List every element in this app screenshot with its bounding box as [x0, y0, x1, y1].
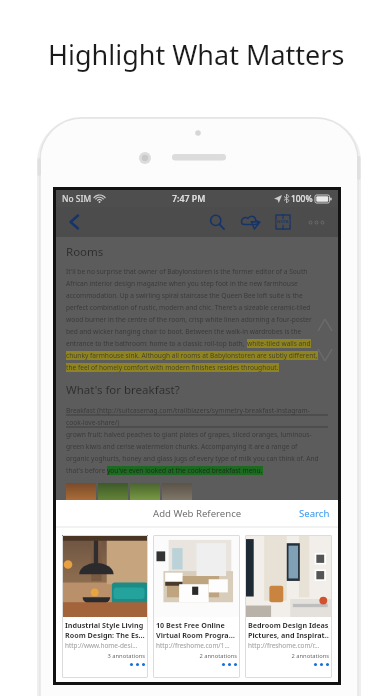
button[interactable]: Back [61, 209, 87, 235]
staticText: the feel of homely comfort with modern f… [66, 363, 279, 372]
staticText: 100% [291, 193, 313, 204]
staticText: chunky farmhouse sink. Although all room… [66, 351, 318, 360]
staticText: Bedroom Design Ideas, [248, 620, 329, 630]
staticText: African interior design magazine when yo… [66, 279, 298, 288]
staticText: that's before [66, 466, 107, 475]
button[interactable] [66, 483, 96, 505]
button[interactable] [98, 483, 128, 505]
staticText: accommodation. Up a swirling spiral stai… [66, 291, 303, 300]
staticText: No SIM [62, 193, 92, 204]
staticText: you've even looked at the cooked breakfa… [107, 466, 263, 475]
staticText: grown fruit: halved peaches to giant pla… [66, 430, 312, 439]
button[interactable]: Search [203, 208, 231, 236]
staticText: wood burner in the centre of the room, c… [66, 315, 312, 324]
staticText: 3 annotations [65, 652, 145, 660]
staticText: Add Web Reference [153, 507, 242, 520]
staticText: Rooms [66, 244, 104, 260]
staticText: Pictures, and Inspirat… [248, 630, 329, 640]
staticText: http://freshome.com/r… [248, 641, 320, 650]
staticText: cook-love-share/) [66, 418, 120, 427]
button[interactable]: Industrial Style Living [62, 535, 148, 678]
button[interactable]: Bedroom Design Ideas, [245, 535, 332, 678]
staticText: bed and wicker hanging chair to boot. Be… [66, 327, 302, 336]
staticText: What's for breakfast? [66, 382, 180, 398]
staticText: Search [299, 507, 330, 520]
staticText: NOTA [277, 219, 289, 225]
staticText: entrance to the bathroom: home to a clas… [66, 339, 247, 348]
staticText: white-tiled walls and [247, 339, 311, 348]
button[interactable]: Search [291, 502, 338, 525]
staticText: Breakfast (http://suitcasemag.com/trailb… [66, 406, 310, 415]
staticText: It'll be no surprise that owner of Babyl… [66, 267, 308, 276]
button[interactable] [162, 483, 192, 505]
staticText: http://www.home-desi… [65, 641, 138, 650]
staticText: Virtual Room Progra… [156, 630, 235, 640]
button[interactable]: Sync to cloud [236, 208, 264, 236]
staticText: Industrial Style Living [65, 620, 144, 630]
staticText: Room Design: The Es… [65, 630, 145, 640]
button[interactable]: More options [302, 208, 330, 236]
staticText: organic yoghurts, honey and glass jugs o… [66, 454, 319, 463]
staticText: perfect combination of rustic, modern an… [66, 303, 311, 312]
button[interactable]: Notes [269, 208, 297, 236]
button[interactable]: 10 Best Free Online [153, 535, 240, 678]
staticText: 7:47 PM [172, 193, 206, 205]
staticText: 2 annotations [248, 652, 329, 660]
button[interactable] [130, 483, 160, 505]
staticText: 2 annotations [156, 652, 237, 660]
staticText: Highlight What Matters [48, 36, 345, 73]
staticText: green kiwis and cerise watermelon chunks… [66, 442, 298, 451]
staticText: 10 Best Free Online [156, 620, 225, 630]
staticText: http://freshome.com/1… [156, 641, 230, 650]
